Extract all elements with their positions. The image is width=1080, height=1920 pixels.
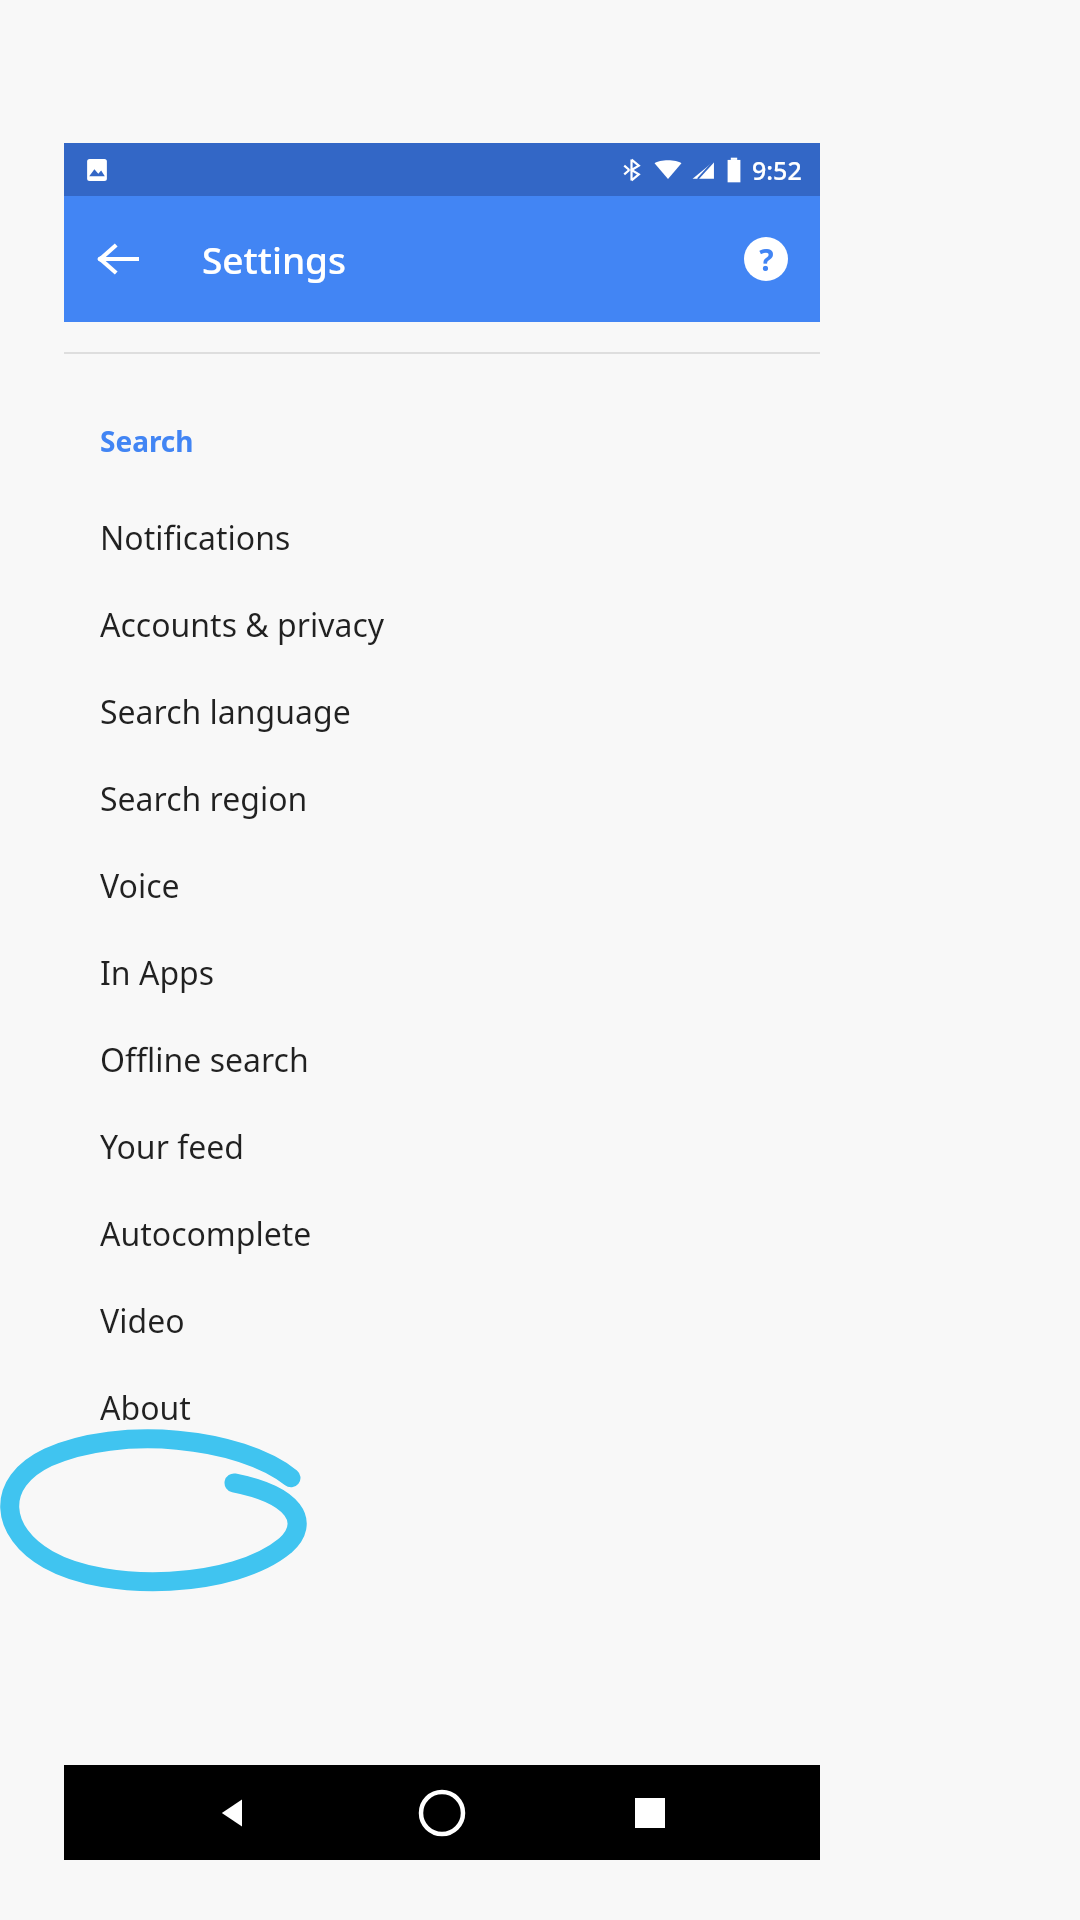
button[interactable]: Autocomplete [64, 1190, 820, 1277]
staticText: Settings [202, 234, 347, 284]
staticText: Search language [100, 690, 351, 734]
button[interactable]: In Apps [64, 929, 820, 1016]
staticText: Offline search [100, 1038, 309, 1082]
button[interactable]: Navigate up [82, 223, 154, 295]
button[interactable]: Search region [64, 755, 820, 842]
staticText: Autocomplete [100, 1212, 312, 1256]
button[interactable]: About [64, 1364, 820, 1451]
staticText: Video [100, 1299, 185, 1343]
staticText: 9:52 [752, 153, 802, 187]
button[interactable]: Your feed [64, 1103, 820, 1190]
staticText: About [100, 1386, 191, 1430]
staticText: In Apps [100, 951, 215, 995]
button[interactable]: Offline search [64, 1016, 820, 1103]
button[interactable]: Search language [64, 668, 820, 755]
button[interactable]: Home [404, 1775, 480, 1851]
button[interactable]: Help [730, 223, 802, 295]
staticText: Voice [100, 864, 180, 908]
button[interactable]: Back [196, 1775, 272, 1851]
staticText: ? [759, 239, 774, 280]
button[interactable]: Notifications [64, 494, 820, 581]
button[interactable]: Recent apps [612, 1775, 688, 1851]
staticText: Search region [100, 777, 308, 821]
staticText: Accounts & privacy [100, 603, 385, 647]
staticText: Search [100, 422, 194, 460]
staticText: Notifications [100, 516, 291, 560]
staticText: Your feed [100, 1125, 244, 1169]
button[interactable]: Voice [64, 842, 820, 929]
button[interactable]: Video [64, 1277, 820, 1364]
button[interactable]: Accounts & privacy [64, 581, 820, 668]
